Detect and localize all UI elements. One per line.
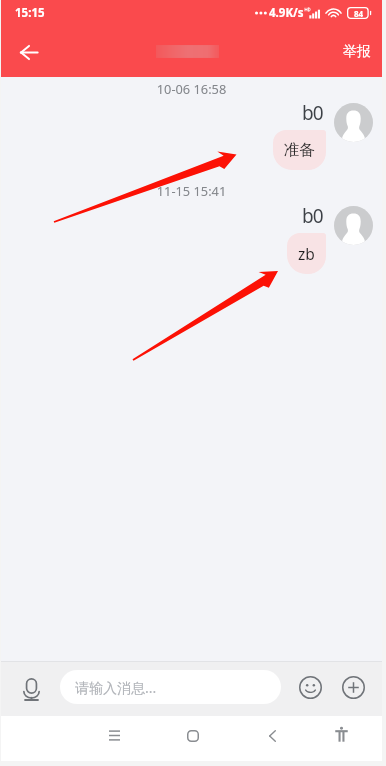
button[interactable]: Avatar: [334, 103, 373, 142]
staticText: b0: [302, 203, 323, 229]
button[interactable]: Back: [248, 713, 296, 758]
staticText: 请输入消息...: [75, 678, 157, 697]
button[interactable]: Recent apps: [90, 713, 138, 758]
staticText: zb: [298, 243, 315, 264]
staticText: 84: [354, 8, 364, 19]
button[interactable]: Voice message: [14, 662, 48, 716]
button[interactable]: 举报: [343, 27, 371, 77]
button[interactable]: Accessibility: [317, 712, 365, 757]
staticText: 举报: [343, 43, 371, 61]
button[interactable]: Avatar: [334, 206, 373, 245]
button[interactable]: More options: [337, 671, 369, 703]
button[interactable]: zb: [287, 233, 326, 274]
button[interactable]: Back: [1, 27, 57, 77]
staticText: 4.9K/s: [269, 5, 304, 21]
button[interactable]: Home: [169, 713, 217, 758]
button[interactable]: Emoji: [294, 671, 326, 703]
staticText: 准备: [284, 140, 315, 160]
staticText: 10-06 16:58: [1, 80, 382, 97]
staticText: 11-15 15:41: [1, 182, 382, 199]
button[interactable]: 请输入消息...: [60, 670, 281, 704]
button[interactable]: 准备: [273, 130, 326, 170]
staticText: 15:15: [15, 5, 45, 21]
staticText: b0: [302, 100, 323, 126]
